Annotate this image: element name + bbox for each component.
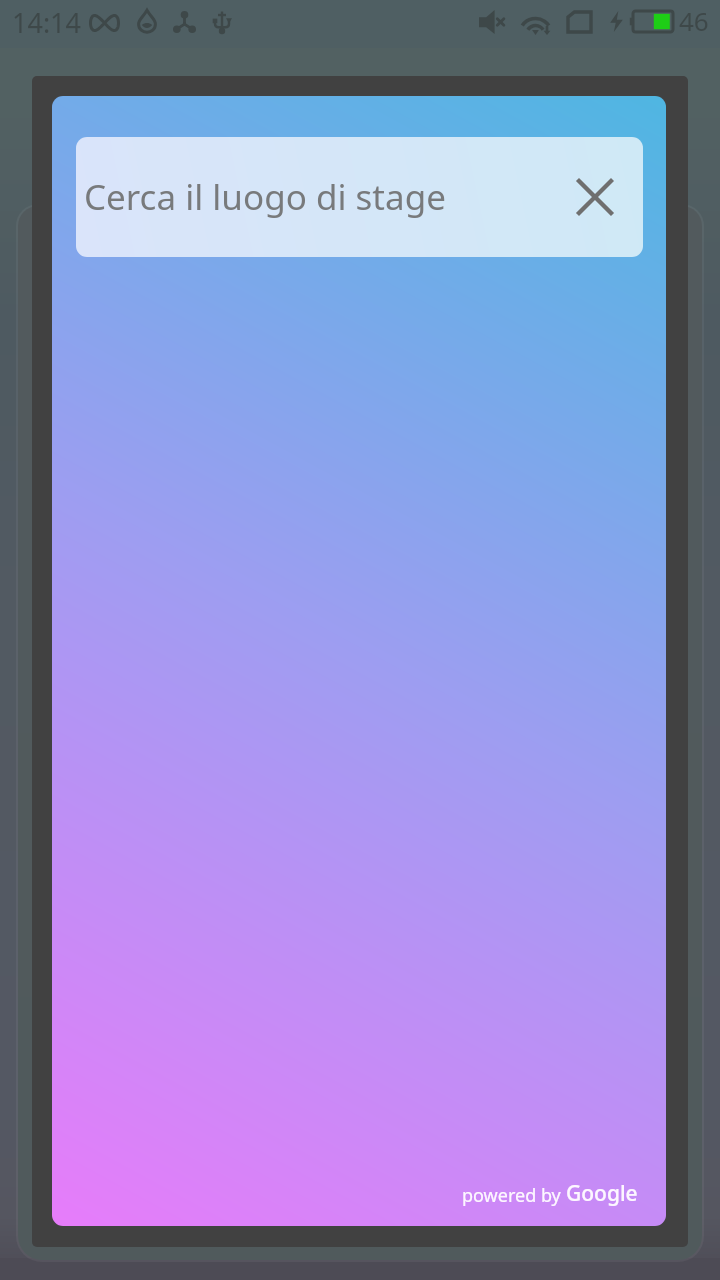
staticText: 14:14 xyxy=(12,4,82,41)
staticText: Cerca il luogo di stage xyxy=(84,173,446,221)
staticText: powered by xyxy=(462,1183,566,1208)
staticText: 46 xyxy=(679,3,709,38)
staticText: Google xyxy=(566,1179,638,1208)
button[interactable]: Clear search xyxy=(567,169,623,225)
button[interactable]: Cerca il luogo di stage xyxy=(76,137,643,257)
